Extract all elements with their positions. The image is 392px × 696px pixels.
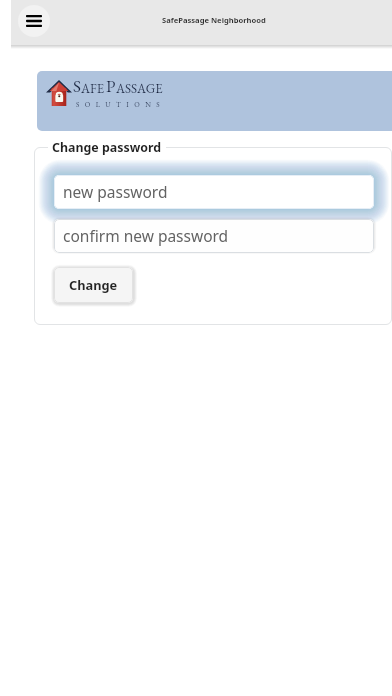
staticText: new password: [63, 181, 168, 202]
staticText: Change password: [52, 139, 162, 156]
staticText: P: [106, 75, 116, 97]
staticText: ASSAGE: [116, 80, 163, 97]
staticText: Change: [69, 276, 118, 293]
button[interactable]: confirm new password: [54, 219, 374, 253]
button[interactable]: Change: [54, 267, 133, 303]
staticText: AFE: [81, 80, 104, 97]
staticText: SafePassage Neighborhood: [162, 15, 266, 25]
button[interactable]: new password: [54, 175, 374, 209]
button[interactable]: Menu: [18, 5, 50, 37]
staticText: confirm new password: [63, 225, 229, 246]
staticText: S: [73, 75, 81, 97]
staticText: S O L U T I O N S: [76, 100, 162, 109]
